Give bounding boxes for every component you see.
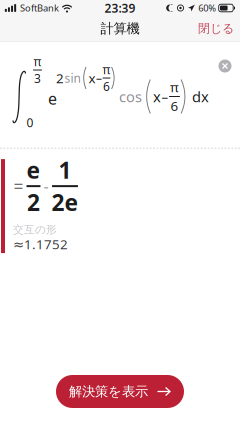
staticText: – <box>161 88 168 105</box>
staticText: SoftBank <box>20 2 59 14</box>
staticText: 2 <box>27 187 40 217</box>
staticText: 6 <box>103 78 110 94</box>
staticText: cos <box>119 87 142 106</box>
staticText: ≈1.1752 <box>13 235 68 253</box>
staticText: e <box>26 155 40 185</box>
staticText: 解決策を表示 <box>69 383 148 400</box>
staticText: e <box>48 88 57 109</box>
staticText: 1 <box>58 155 71 185</box>
staticText: sin <box>64 70 80 86</box>
staticText: = <box>13 175 23 198</box>
staticText: π <box>33 54 41 69</box>
button[interactable]: Clear <box>213 54 237 78</box>
staticText: π <box>102 62 110 77</box>
staticText: 閉じる <box>198 21 234 36</box>
staticText: 23:39 <box>104 0 135 16</box>
button[interactable]: 解決策を表示 <box>56 375 184 408</box>
staticText: - <box>43 175 48 197</box>
staticText: x <box>88 69 95 87</box>
button[interactable]: 閉じる <box>192 16 240 41</box>
staticText: 0 <box>26 114 33 130</box>
staticText: 2e <box>51 187 78 217</box>
staticText: 計算機 <box>100 20 139 37</box>
staticText: π <box>170 78 179 96</box>
staticText: 交互の形 <box>13 223 57 236</box>
staticText: x <box>153 87 161 106</box>
staticText: 2 <box>56 69 64 87</box>
staticText: – <box>96 70 102 86</box>
staticText: 3 <box>34 70 41 86</box>
staticText: dx <box>192 87 209 106</box>
staticText: 6 <box>170 97 178 115</box>
staticText: 60% <box>198 2 216 14</box>
